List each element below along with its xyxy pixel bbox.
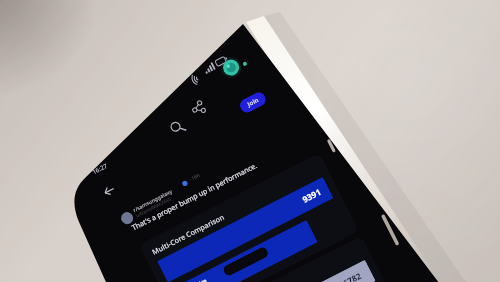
staticText: · 16h [188,172,201,183]
button[interactable]: Share [188,99,207,117]
staticText: r/samsunggalaxy [131,187,173,213]
button[interactable]: Join [238,90,268,115]
staticText: Your Device [177,276,208,282]
button[interactable]: Search [168,117,188,138]
button[interactable]: Multi-Core Comparison [138,153,359,282]
staticText: u/DanielMAK2655 [135,195,172,218]
staticText: That's a proper bump up in performance. [130,160,259,232]
staticText: 9391 [300,186,323,205]
staticText: 16:27 [90,161,108,175]
button[interactable]: Single-Core Comparison [181,236,401,282]
staticText: 6782 [341,270,364,282]
button[interactable]: Back [100,182,118,199]
staticText: Join [246,96,260,108]
staticText: Multi-Core Comparison [150,212,226,257]
